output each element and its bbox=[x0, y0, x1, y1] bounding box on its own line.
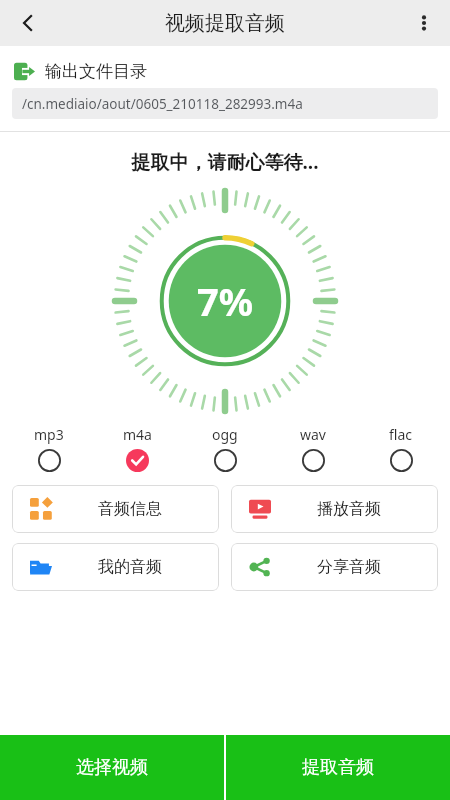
button[interactable]: 选择视频 bbox=[0, 735, 224, 800]
button[interactable]: 播放音频 bbox=[231, 485, 438, 533]
button[interactable]: More options bbox=[398, 0, 450, 46]
button[interactable]: 分享音频 bbox=[231, 543, 438, 591]
staticText: 播放音频 bbox=[317, 499, 381, 519]
button[interactable]: ogg bbox=[194, 425, 256, 472]
button[interactable]: m4a bbox=[106, 425, 168, 472]
staticText: 输出文件目录 bbox=[45, 61, 147, 82]
staticText: 7% bbox=[197, 275, 254, 327]
staticText: 视频提取音频 bbox=[165, 11, 285, 36]
staticText: ogg bbox=[212, 425, 238, 444]
button[interactable]: 音频信息 bbox=[12, 485, 219, 533]
staticText: 我的音频 bbox=[98, 557, 162, 577]
staticText: 提取音频 bbox=[302, 756, 374, 779]
staticText: /cn.mediaio/aout/0605_210118_282993.m4a bbox=[22, 95, 303, 113]
staticText: flac bbox=[389, 425, 413, 444]
staticText: 分享音频 bbox=[317, 557, 381, 577]
staticText: wav bbox=[300, 425, 326, 444]
button[interactable]: 我的音频 bbox=[12, 543, 219, 591]
staticText: 选择视频 bbox=[76, 756, 148, 779]
button[interactable]: wav bbox=[282, 425, 344, 472]
button[interactable]: /cn.mediaio/aout/0605_210118_282993.m4a bbox=[12, 88, 438, 119]
staticText: 提取中，请耐心等待... bbox=[0, 149, 450, 175]
button[interactable]: mp3 bbox=[18, 425, 80, 472]
button[interactable]: 提取音频 bbox=[226, 735, 450, 800]
button[interactable]: Back bbox=[0, 0, 56, 46]
staticText: 音频信息 bbox=[98, 499, 162, 519]
button[interactable]: flac bbox=[370, 425, 432, 472]
staticText: mp3 bbox=[34, 425, 64, 444]
staticText: m4a bbox=[123, 425, 152, 444]
